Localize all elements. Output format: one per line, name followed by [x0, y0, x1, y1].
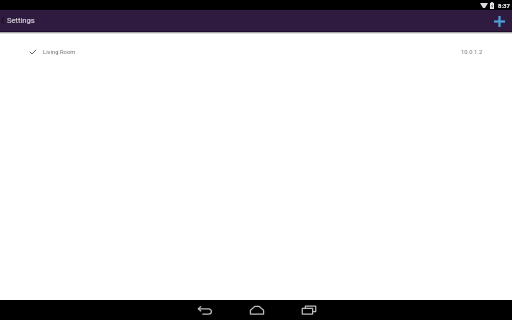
button[interactable]: Recent apps	[290, 300, 327, 320]
staticText: 10.0.1.2	[461, 49, 483, 56]
button[interactable]: Add	[486, 10, 512, 31]
button[interactable]: Settings	[0, 10, 35, 31]
staticText: 8:37	[498, 2, 510, 9]
staticText: Living Room	[43, 49, 76, 56]
staticText: Settings	[7, 16, 35, 25]
button[interactable]: Home	[238, 300, 275, 320]
button[interactable]: Back	[186, 300, 223, 320]
button[interactable]: Living Room	[0, 45, 512, 59]
